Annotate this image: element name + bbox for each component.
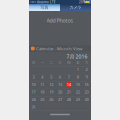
staticText: 2 [86, 67, 88, 72]
staticText: 写真 [40, 5, 48, 10]
staticText: 六 [85, 60, 88, 65]
staticText: 25 [40, 97, 44, 102]
staticText: 18 [40, 89, 44, 95]
staticText: 15 [76, 82, 80, 87]
staticText: 22 [76, 89, 80, 95]
staticText: 四 [67, 60, 70, 65]
staticText: 27 [58, 97, 62, 102]
staticText: 20 [58, 89, 62, 95]
staticText: 9 [86, 74, 88, 80]
staticText: 19 [49, 89, 53, 95]
staticText: Add Photos [46, 17, 73, 24]
staticText: Calendar - Month View [36, 46, 82, 51]
staticText: 20% [79, 0, 85, 4]
staticText: 10 [31, 82, 35, 87]
staticText: 12 [49, 82, 53, 87]
staticText: 16 [85, 82, 89, 87]
staticText: 五 [76, 60, 79, 65]
staticText: 23 [85, 89, 89, 95]
staticText: カメラ [69, 5, 81, 10]
staticText: 8 [77, 74, 79, 80]
staticText: 5 [50, 74, 52, 80]
staticText: 28 [67, 97, 71, 102]
staticText: 1 [77, 67, 79, 72]
staticText: 三 [58, 60, 61, 65]
staticText: 4 [41, 74, 43, 80]
staticText: 二 [50, 60, 53, 65]
staticText: 24 [31, 97, 35, 102]
staticText: 21 [67, 89, 71, 95]
staticText: 7月 2016 [66, 53, 87, 60]
staticText: 17 [31, 89, 35, 95]
staticText: 16:28 [83, 0, 92, 4]
staticText: 一 [41, 60, 44, 65]
button[interactable]: 写真 [29, 4, 60, 11]
staticText: 3 [32, 74, 34, 80]
staticText: 11 [40, 82, 44, 87]
button[interactable]: カメラ [60, 4, 91, 11]
staticText: 7 [68, 74, 70, 80]
staticText: 29 [76, 97, 80, 102]
staticText: 6 [59, 74, 61, 80]
staticText: docomo LTE [37, 0, 56, 4]
staticText: 13 [58, 82, 62, 87]
staticText: 31 [31, 104, 35, 110]
staticText: 14 [67, 82, 71, 87]
staticText: 日 [32, 60, 35, 65]
button[interactable]: Calendar - Month View [29, 45, 91, 52]
staticText: 30 [85, 97, 89, 102]
button[interactable]: Add Photos [29, 16, 91, 25]
staticText: 26 [49, 97, 53, 102]
